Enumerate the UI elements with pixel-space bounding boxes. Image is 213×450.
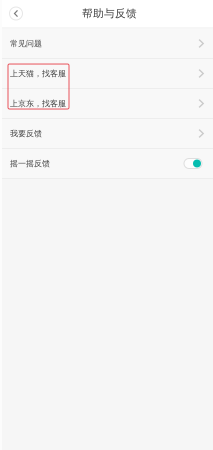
button[interactable]: Toggle shake feedback [184,158,202,168]
button[interactable]: 上天猫，找客服 [0,59,213,88]
button[interactable]: Back [6,3,26,23]
staticText: 帮助与反馈 [82,7,137,20]
button[interactable]: 常见问题 [0,29,213,58]
button[interactable]: 我要反馈 [0,119,213,148]
staticText: 我要反馈 [10,129,42,138]
staticText: 上天猫，找客服 [10,69,66,78]
button[interactable]: 上京东，找客服 [0,89,213,118]
staticText: 上京东，找客服 [10,99,66,108]
staticText: 摇一摇反馈 [10,159,50,168]
staticText: 常见问题 [10,39,42,48]
